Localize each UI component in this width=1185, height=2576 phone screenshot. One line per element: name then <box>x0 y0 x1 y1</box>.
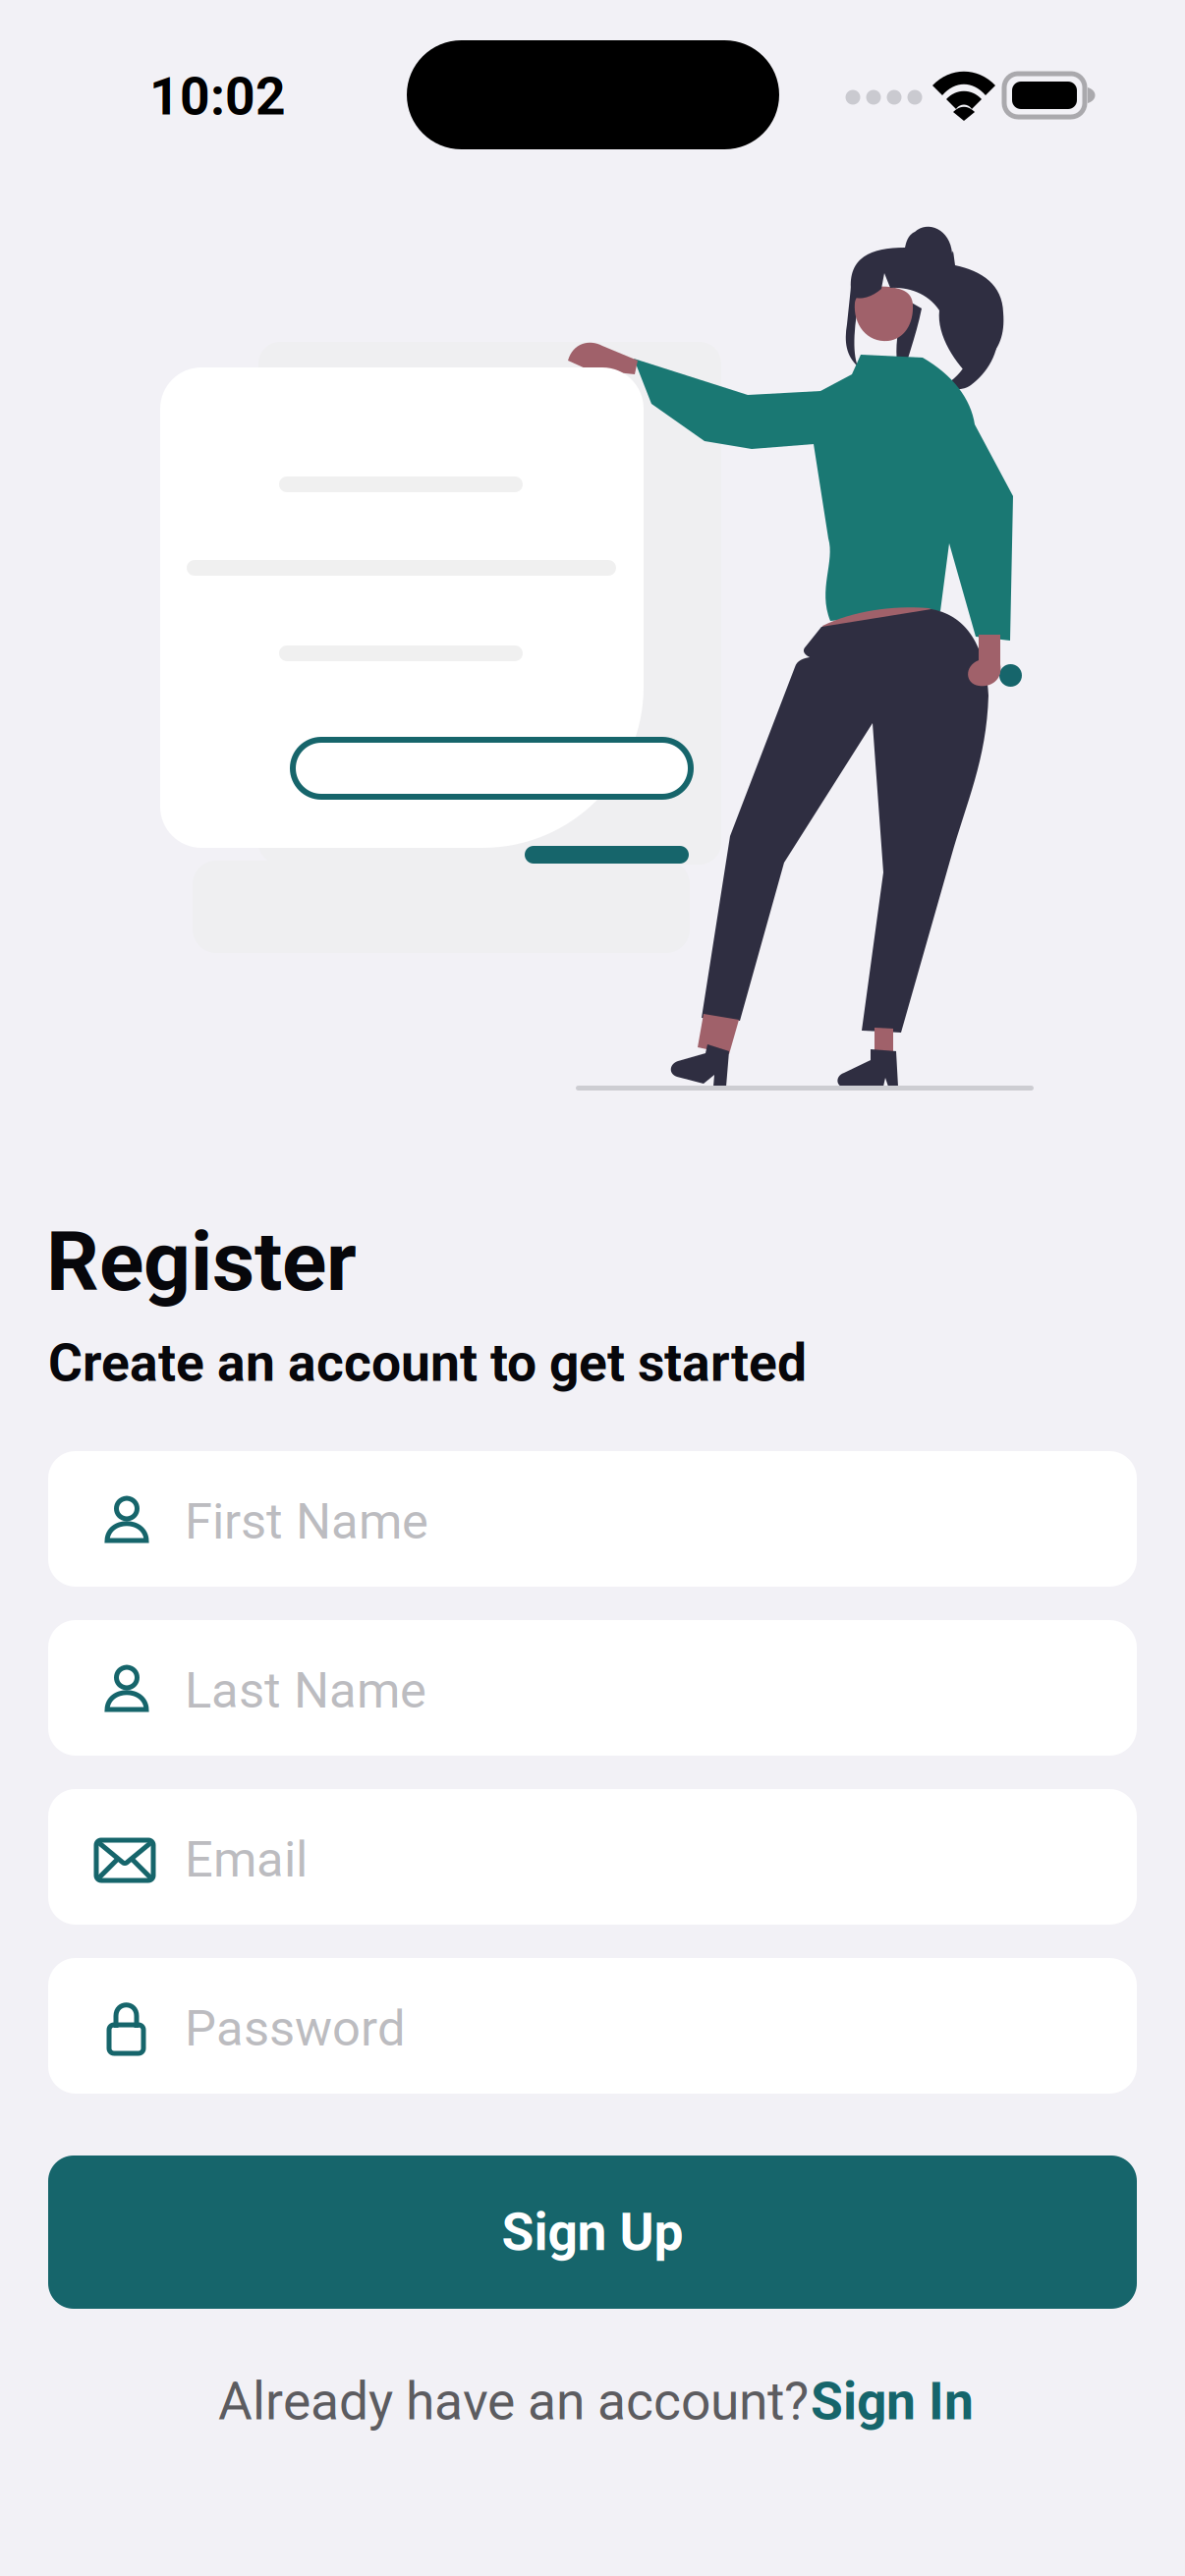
button[interactable]: Sign Up <box>48 2156 1137 2309</box>
staticText: Register <box>46 1213 357 1310</box>
staticText: First Name <box>185 1492 428 1551</box>
button[interactable]: Email <box>48 1789 1137 1925</box>
button[interactable]: Sign In <box>0 0 1185 2576</box>
staticText: Create an account to get started <box>48 1332 807 1394</box>
staticText: Last Name <box>185 1661 426 1720</box>
staticText: 10:02 <box>149 66 286 127</box>
button[interactable]: First Name <box>48 1451 1137 1587</box>
button[interactable]: Last Name <box>48 1620 1137 1756</box>
staticText: Sign In <box>811 2371 974 2432</box>
button[interactable]: Password <box>48 1958 1137 2094</box>
staticText: Sign Up <box>502 2201 683 2263</box>
staticText: Already have an account? <box>218 2371 809 2432</box>
staticText: Email <box>185 1830 308 1889</box>
staticText: Password <box>185 1999 406 2058</box>
